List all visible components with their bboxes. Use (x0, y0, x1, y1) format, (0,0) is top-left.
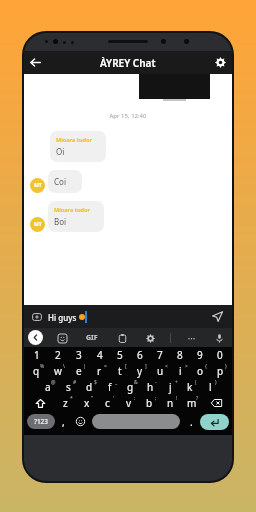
staticText: i (179, 364, 182, 378)
button[interactable]: . (183, 414, 200, 429)
button[interactable]: More options (183, 330, 199, 346)
button[interactable]: 8 (170, 347, 190, 363)
button[interactable]: Settings (209, 51, 232, 74)
button[interactable]: w (47, 363, 68, 379)
staticText: $ (94, 379, 97, 386)
button[interactable]: 7 (150, 347, 170, 363)
staticText: MT (34, 221, 42, 228)
button[interactable]: Clipboard (114, 330, 130, 346)
button[interactable]: x (76, 395, 97, 411)
staticText: } (225, 363, 227, 370)
staticText: 1 (34, 348, 40, 362)
staticText: = (104, 363, 107, 370)
staticText: t (118, 364, 122, 378)
staticText: Boi (54, 216, 67, 227)
button[interactable]: g (120, 379, 140, 395)
staticText: * (70, 395, 73, 402)
staticText: 0 (217, 348, 223, 362)
staticText: % (40, 363, 45, 370)
staticText: p (217, 364, 224, 378)
button[interactable]: Keyboard settings (142, 330, 158, 346)
button[interactable]: r (89, 363, 110, 379)
staticText: 7 (157, 348, 163, 362)
staticText: d (86, 380, 93, 394)
button[interactable]: Stickers (54, 330, 70, 346)
staticText: h (147, 380, 154, 394)
button[interactable]: Back (24, 51, 47, 74)
button[interactable]: 1 (26, 347, 47, 363)
button[interactable]: y (130, 363, 150, 379)
button[interactable]: f (100, 379, 120, 395)
button[interactable]: Collapse (28, 330, 43, 345)
staticText: ) (215, 379, 217, 386)
staticText: " (91, 395, 94, 402)
button[interactable]: a (37, 379, 58, 395)
staticText: b (146, 396, 153, 410)
button[interactable]: t (110, 363, 130, 379)
button[interactable]: 2 (47, 347, 68, 363)
button[interactable]: j (160, 379, 180, 395)
button[interactable]: v (118, 395, 139, 411)
staticText: ! (176, 395, 178, 402)
staticText: a (45, 380, 51, 394)
staticText: 5 (117, 348, 123, 362)
button[interactable]: Add attachment (30, 310, 44, 324)
staticText: @ (51, 379, 56, 386)
button[interactable]: Send (207, 306, 228, 327)
button[interactable]: 6 (130, 347, 150, 363)
button[interactable]: u (150, 363, 170, 379)
button[interactable]: q (26, 363, 47, 379)
button[interactable]: l (200, 379, 220, 395)
staticText: ÀYREY Chat (100, 56, 156, 70)
staticText: \ (63, 363, 65, 370)
staticText: GIF (86, 333, 98, 343)
button[interactable]: Backspace (202, 395, 230, 411)
staticText: > (185, 363, 188, 370)
staticText: Oi (56, 146, 65, 157)
staticText: Mioara tudor (56, 136, 92, 143)
staticText: v (126, 396, 132, 410)
button[interactable]: Coi (48, 170, 82, 193)
button[interactable]: 4 (89, 347, 110, 363)
button[interactable]: e (68, 363, 89, 379)
button[interactable]: GIF (82, 328, 102, 347)
button[interactable]: Space (92, 414, 180, 429)
button[interactable]: i (170, 363, 190, 379)
button[interactable]: z (55, 395, 76, 411)
staticText: f (108, 380, 112, 394)
button[interactable]: c (97, 395, 118, 411)
staticText: ' (113, 395, 115, 402)
staticText: , (62, 415, 65, 429)
button[interactable]: k (180, 379, 200, 395)
button[interactable]: 3 (68, 347, 89, 363)
button[interactable]: p (210, 363, 230, 379)
button[interactable]: Shift (26, 395, 55, 411)
staticText: MT (34, 182, 42, 189)
button[interactable]: n (160, 395, 181, 411)
button[interactable]: Voice input (211, 330, 227, 346)
button[interactable]: s (58, 379, 79, 395)
staticText: < (165, 363, 168, 370)
button[interactable]: Emoji (72, 414, 89, 429)
button[interactable]: , (55, 414, 72, 429)
staticText: + (175, 379, 178, 386)
button[interactable]: 0 (210, 347, 230, 363)
button[interactable]: d (79, 379, 100, 395)
button[interactable]: Enter (200, 414, 229, 430)
button[interactable]: m (181, 395, 202, 411)
button[interactable]: 5 (110, 347, 130, 363)
button[interactable]: 9 (190, 347, 210, 363)
staticText: g (127, 380, 134, 394)
button[interactable]: Mioara tudor (48, 201, 104, 232)
staticText: Coi (54, 176, 66, 187)
button[interactable]: Mioara tudor (50, 131, 106, 162)
button[interactable]: ?123 (27, 414, 55, 429)
button[interactable]: o (190, 363, 210, 379)
staticText: { (205, 363, 207, 370)
staticText: ?123 (34, 417, 49, 426)
staticText: u (157, 364, 164, 378)
button[interactable]: b (139, 395, 160, 411)
button[interactable]: h (140, 379, 160, 395)
staticText: ( (195, 379, 197, 386)
staticText: 2 (55, 348, 61, 362)
